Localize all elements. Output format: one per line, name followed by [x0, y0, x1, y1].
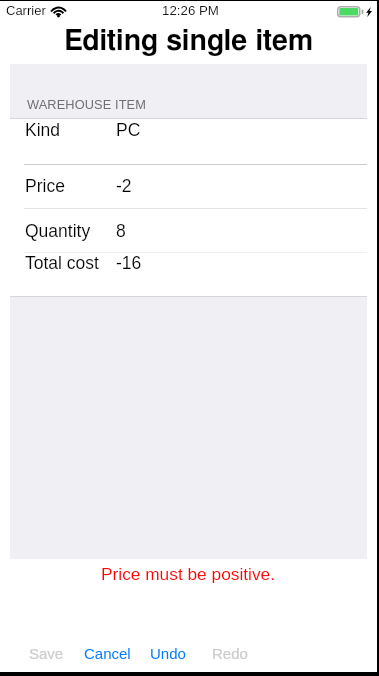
staticText: Carrier — [6, 3, 46, 18]
button[interactable]: Cancel — [76, 634, 123, 672]
button[interactable]: Redo — [204, 634, 240, 672]
staticText: Kind — [25, 120, 61, 140]
staticText: Editing single item — [64, 27, 314, 56]
button[interactable]: Quantity — [0, 209, 377, 252]
staticText: PC — [116, 120, 141, 140]
staticText: Save — [29, 645, 64, 662]
staticText: WAREHOUSE ITEM — [27, 97, 146, 111]
button[interactable]: Undo — [142, 634, 178, 672]
staticText: Total cost — [25, 253, 99, 273]
other: Battery charging — [337, 6, 364, 18]
staticText: Price must be positive. — [101, 564, 275, 583]
staticText: -2 — [116, 176, 132, 196]
staticText: Quantity — [25, 221, 91, 241]
staticText: Price — [25, 176, 65, 196]
staticText: 8 — [116, 221, 126, 241]
staticText: 12:26 PM — [162, 3, 219, 18]
staticText: -16 — [116, 253, 142, 273]
button[interactable]: Total cost — [0, 253, 377, 296]
button[interactable]: Save — [21, 634, 56, 672]
other: Charging — [366, 7, 372, 17]
button[interactable]: Price — [0, 165, 377, 208]
staticText: Cancel — [84, 645, 131, 662]
staticText: Redo — [212, 645, 248, 662]
other: Wi-Fi — [51, 6, 66, 17]
button[interactable]: Kind — [0, 119, 377, 165]
staticText: Undo — [150, 645, 186, 662]
